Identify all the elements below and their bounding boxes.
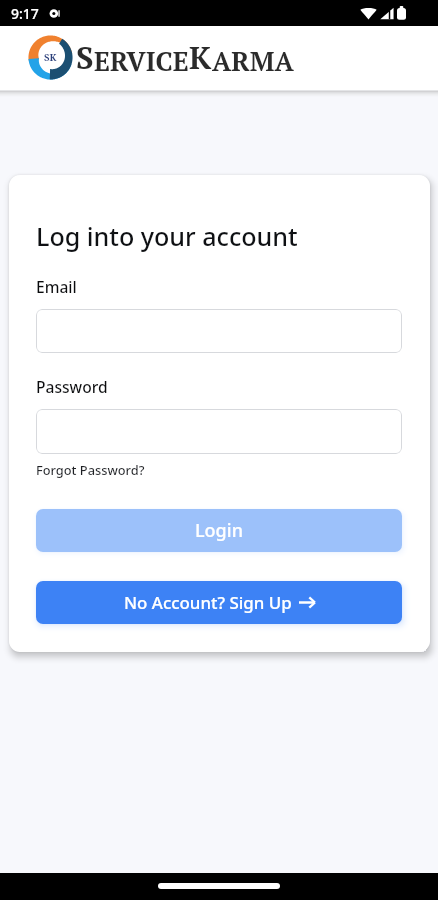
staticText: ERVICE [94,43,189,78]
staticText: 9:17 [11,4,39,23]
button[interactable]: Forgot Password? [36,461,145,478]
staticText: No Account? Sign Up [124,591,292,614]
staticText: SK [44,51,57,64]
button[interactable] [36,409,402,454]
other: Notification [48,7,61,20]
staticText: S [76,36,94,78]
staticText: Email [36,276,77,297]
staticText: K [189,36,212,78]
staticText: Log into your account [36,219,298,253]
button[interactable]: Login [36,509,402,552]
staticText: ARMA [212,43,294,78]
button[interactable] [36,309,402,353]
button[interactable]: No Account? Sign Up [36,581,402,624]
staticText: Password [36,376,108,397]
staticText: Login [195,518,243,543]
